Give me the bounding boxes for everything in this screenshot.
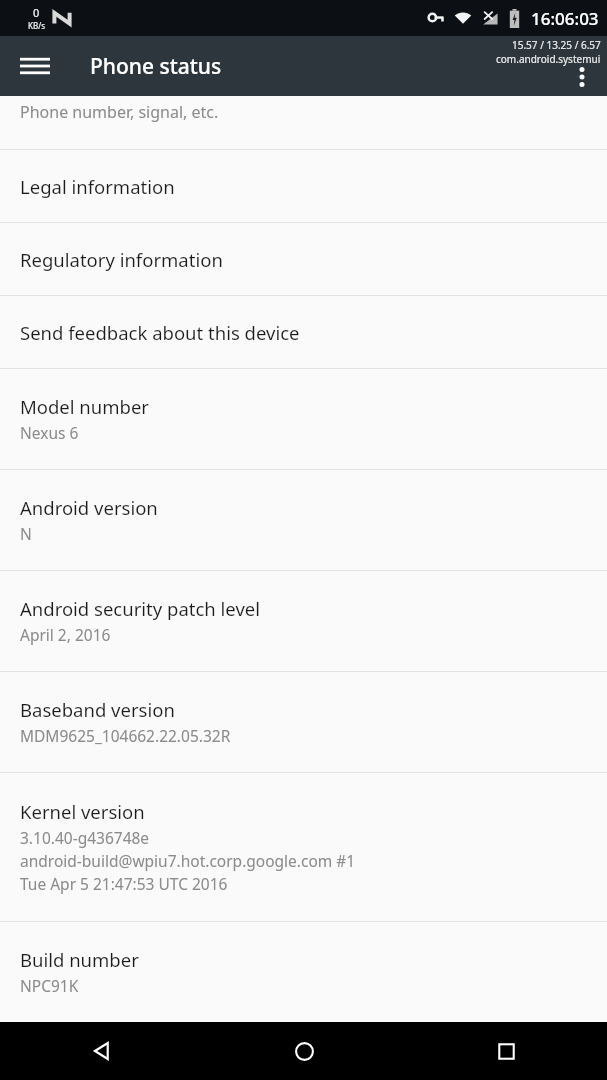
staticText: Android version xyxy=(20,495,158,520)
staticText: 3.10.40-g436748e xyxy=(20,827,150,848)
staticText: Build number xyxy=(20,947,139,972)
button[interactable]: Baseband version xyxy=(0,672,607,772)
staticText: Tue Apr 5 21:47:53 UTC 2016 xyxy=(20,873,228,894)
staticText: Model number xyxy=(20,394,149,419)
button[interactable]: Back xyxy=(0,1022,203,1080)
button[interactable]: Phone number, signal, etc. xyxy=(0,96,607,149)
staticText: Phone status xyxy=(90,52,222,81)
button[interactable]: Open navigation menu xyxy=(14,45,56,87)
button[interactable]: Model number xyxy=(0,369,607,469)
staticText: Send feedback about this device xyxy=(20,320,300,345)
staticText: Baseband version xyxy=(20,697,175,722)
staticText: April 2, 2016 xyxy=(20,624,111,645)
button[interactable]: Android version xyxy=(0,470,607,570)
staticText: MDM9625_104662.22.05.32R xyxy=(20,725,231,746)
staticText: Kernel version xyxy=(20,799,145,824)
button[interactable]: Recent apps xyxy=(405,1022,607,1080)
staticText: Legal information xyxy=(20,174,175,199)
staticText: Nexus 6 xyxy=(20,422,79,443)
staticText: 15.57 / 13.25 / 6.57 xyxy=(512,38,601,52)
staticText: 0 xyxy=(33,5,40,20)
button[interactable]: More options xyxy=(565,60,599,94)
staticText: N xyxy=(20,523,32,544)
staticText: Android security patch level xyxy=(20,596,261,621)
button[interactable]: Android security patch level xyxy=(0,571,607,671)
staticText: Phone number, signal, etc. xyxy=(20,101,219,123)
staticText: com.android.systemui xyxy=(496,52,601,66)
staticText: Regulatory information xyxy=(20,247,223,272)
staticText: KB/s xyxy=(28,20,45,31)
staticText: android-build@wpiu7.hot.corp.google.com … xyxy=(20,850,356,871)
button[interactable]: Build number xyxy=(0,922,607,1022)
button[interactable]: Home xyxy=(203,1022,405,1080)
button[interactable]: Send feedback about this device xyxy=(0,296,607,368)
button[interactable]: Kernel version xyxy=(0,773,607,921)
staticText: 16:06:03 xyxy=(531,7,599,30)
staticText: NPC91K xyxy=(20,975,79,996)
button[interactable]: Legal information xyxy=(0,150,607,222)
button[interactable]: Regulatory information xyxy=(0,223,607,295)
